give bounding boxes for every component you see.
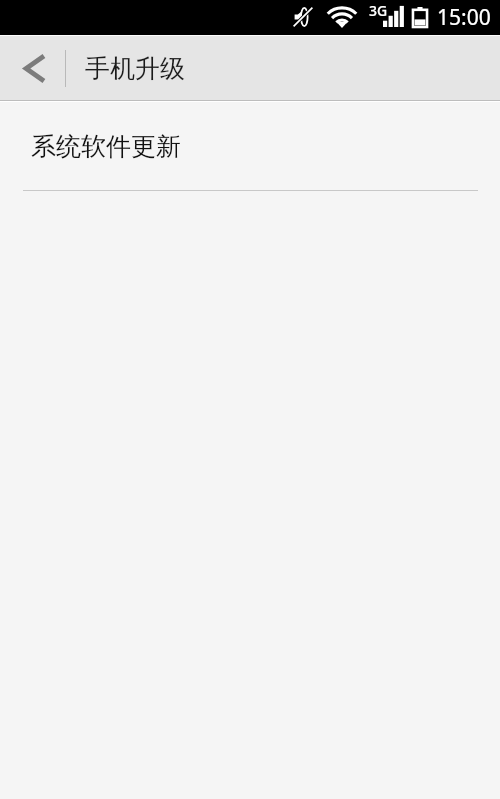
staticText: 手机升级 (85, 53, 185, 84)
button[interactable]: Back (0, 36, 66, 100)
other: Battery (412, 7, 428, 27)
staticText: 15:00 (437, 3, 491, 32)
other: Silent mode (293, 7, 313, 27)
other: Wi-Fi (328, 7, 356, 28)
other: Mobile signal (383, 6, 404, 27)
button[interactable]: 系统软件更新 (0, 102, 500, 190)
staticText: 3G (369, 1, 388, 20)
staticText: 系统软件更新 (31, 131, 181, 162)
